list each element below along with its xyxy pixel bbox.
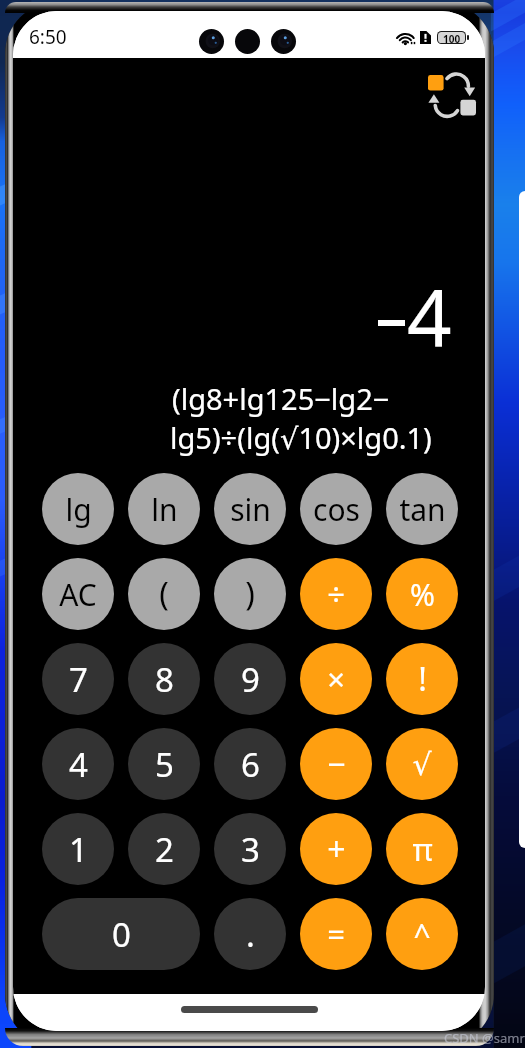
button[interactable]: Switch mode xyxy=(413,59,467,113)
button[interactable]: = xyxy=(300,898,372,970)
staticText: 0 xyxy=(112,912,131,957)
button[interactable]: Home xyxy=(181,1006,318,1013)
staticText: 1 xyxy=(69,827,88,872)
staticText: ! xyxy=(418,657,427,701)
button[interactable]: ) xyxy=(214,558,286,630)
button[interactable]: × xyxy=(300,643,372,715)
button[interactable]: 6 xyxy=(214,728,286,800)
button[interactable]: ^ xyxy=(386,898,458,970)
staticText: lg5)÷(lg(√10)×lg0.1) xyxy=(170,418,432,457)
staticText: % xyxy=(410,574,435,615)
staticText: cos xyxy=(313,489,360,530)
staticText: 4 xyxy=(407,264,452,370)
staticText: ^ xyxy=(413,914,431,955)
button[interactable]: ln xyxy=(128,473,200,545)
staticText: π xyxy=(412,828,433,870)
button[interactable]: 4 xyxy=(42,728,114,800)
staticText: 100 xyxy=(443,32,461,43)
staticText: lg xyxy=(65,489,92,530)
staticText: √ xyxy=(412,747,432,782)
staticText: tan xyxy=(399,489,446,530)
staticText: 7 xyxy=(69,657,88,702)
staticText: 6 xyxy=(241,742,260,787)
staticText: + xyxy=(327,827,346,871)
staticText: 9 xyxy=(241,657,260,702)
staticText: AC xyxy=(59,574,97,615)
staticText: 5 xyxy=(155,742,174,787)
button[interactable]: 1 xyxy=(42,813,114,885)
button[interactable]: − xyxy=(300,728,372,800)
staticText: ) xyxy=(245,572,255,616)
button[interactable]: 8 xyxy=(128,643,200,715)
button[interactable]: 7 xyxy=(42,643,114,715)
button[interactable]: tan xyxy=(386,473,458,545)
button[interactable]: . xyxy=(214,898,286,970)
button[interactable]: + xyxy=(300,813,372,885)
button[interactable]: 0 xyxy=(42,898,200,970)
staticText: ÷ xyxy=(327,573,345,615)
staticText: 3 xyxy=(241,827,260,872)
staticText: CSDN @samroom xyxy=(444,1029,525,1047)
staticText: − xyxy=(327,742,346,786)
button[interactable]: cos xyxy=(300,473,372,545)
staticText: = xyxy=(327,913,345,955)
staticText: . xyxy=(246,912,255,957)
button[interactable]: ! xyxy=(386,643,458,715)
staticText: 4 xyxy=(69,742,88,787)
button[interactable]: ÷ xyxy=(300,558,372,630)
staticText: ( xyxy=(159,572,169,616)
button[interactable]: % xyxy=(386,558,458,630)
staticText: (lg8+lg125−lg2− xyxy=(172,379,390,418)
staticText: 2 xyxy=(155,827,174,872)
button[interactable]: 2 xyxy=(128,813,200,885)
button[interactable]: ( xyxy=(128,558,200,630)
staticText: 8 xyxy=(155,657,174,702)
staticText: × xyxy=(327,658,345,700)
button[interactable]: √ xyxy=(386,728,458,800)
button[interactable]: 3 xyxy=(214,813,286,885)
button[interactable]: 5 xyxy=(128,728,200,800)
staticText: sin xyxy=(230,489,271,530)
button[interactable]: sin xyxy=(214,473,286,545)
button[interactable]: lg xyxy=(42,473,114,545)
button[interactable]: π xyxy=(386,813,458,885)
staticText: 6:50 xyxy=(29,24,67,50)
button[interactable]: 9 xyxy=(214,643,286,715)
staticText: ln xyxy=(151,489,178,530)
button[interactable]: AC xyxy=(42,558,114,630)
